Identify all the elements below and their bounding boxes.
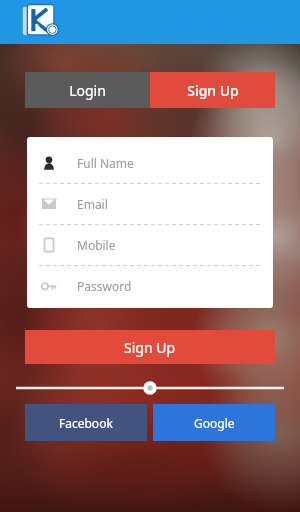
staticText: Sign Up: [124, 338, 176, 357]
button[interactable]: Mobile: [27, 225, 273, 265]
button[interactable]: Email: [27, 184, 273, 224]
button[interactable]: Facebook: [25, 404, 147, 441]
staticText: Full Name: [77, 155, 134, 171]
button[interactable]: Password: [27, 266, 273, 306]
staticText: Sign Up: [187, 81, 239, 100]
button[interactable]: Sign Up: [150, 72, 275, 108]
staticText: Login: [69, 81, 106, 100]
button[interactable]: Login: [25, 72, 150, 108]
button[interactable]: Full Name: [27, 143, 273, 183]
staticText: Mobile: [77, 237, 116, 253]
staticText: Facebook: [59, 415, 113, 431]
other: App logo: [22, 3, 60, 41]
staticText: Email: [77, 196, 108, 212]
button[interactable]: Google: [153, 404, 275, 441]
staticText: Google: [194, 415, 235, 431]
button[interactable]: Sign Up: [25, 330, 275, 364]
staticText: Password: [77, 278, 132, 294]
